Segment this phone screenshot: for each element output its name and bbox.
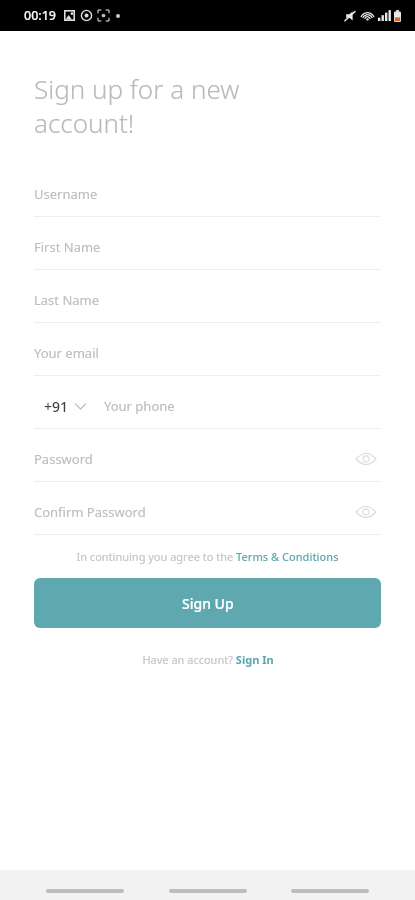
button[interactable]: Last Name (34, 278, 381, 323)
button[interactable]: +91 (34, 397, 90, 416)
staticText: 00:19 (24, 7, 57, 24)
button[interactable]: Navigation button (291, 889, 369, 893)
button[interactable]: Your email (34, 331, 381, 376)
button[interactable]: Confirm Password (34, 490, 381, 535)
button[interactable]: Username (34, 172, 381, 217)
button[interactable]: Have an account? Sign In (142, 652, 274, 667)
button[interactable]: Your phone (104, 384, 381, 428)
button[interactable]: Password (34, 437, 381, 482)
button[interactable]: First Name (34, 225, 381, 270)
staticText: Password (34, 450, 93, 468)
button[interactable]: Navigation button (46, 889, 124, 893)
staticText: First Name (34, 238, 101, 256)
button[interactable]: Show password (351, 497, 381, 527)
button[interactable]: Show password (351, 444, 381, 474)
staticText: Sign Up (182, 594, 234, 613)
staticText: Sign up for a new account! (34, 71, 240, 140)
staticText: Your phone (104, 397, 175, 415)
button[interactable]: Sign Up (34, 578, 381, 628)
staticText: Username (34, 185, 98, 203)
button[interactable]: Navigation button (169, 889, 247, 893)
staticText: Your email (34, 344, 99, 362)
button[interactable]: In continuing you agree to the Terms & C… (76, 549, 339, 564)
staticText: Last Name (34, 291, 100, 309)
staticText: +91 (44, 397, 69, 416)
staticText: Confirm Password (34, 503, 146, 521)
